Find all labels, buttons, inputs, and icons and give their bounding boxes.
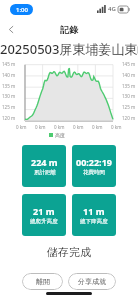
staticText: 125 m — [122, 104, 136, 110]
staticText: 11 m — [83, 205, 105, 217]
staticText: 00:22:19 — [76, 156, 112, 168]
staticText: 120 m — [122, 115, 136, 121]
button[interactable]: Back — [0, 18, 22, 40]
button[interactable]: 11 m — [72, 194, 116, 236]
staticText: 120 m — [2, 115, 16, 121]
staticText: 4G — [108, 5, 116, 13]
staticText: 累計距離 — [34, 169, 56, 176]
staticText: 花費時間 — [83, 169, 105, 176]
staticText: 0 km — [35, 124, 46, 130]
staticText: 離開 — [36, 277, 50, 286]
staticText: 20250503屏東埔姜山東峰 — [0, 40, 138, 58]
staticText: 高度 — [55, 132, 65, 138]
staticText: 140 m — [2, 72, 16, 78]
staticText: 130 m — [2, 93, 16, 99]
button[interactable]: 00:22:19 — [72, 145, 116, 187]
staticText: 記錄 — [60, 24, 78, 35]
staticText: 0 km — [111, 124, 122, 130]
staticText: 21 m — [33, 205, 55, 217]
button[interactable]: 離開 — [22, 273, 63, 290]
staticText: 儲存完成 — [0, 245, 138, 259]
staticText: 0 km — [54, 124, 65, 130]
staticText: 分享成就 — [78, 277, 106, 286]
staticText: 總下降高度 — [80, 218, 108, 225]
staticText: 140 m — [122, 72, 136, 78]
button[interactable]: 分享成就 — [68, 273, 116, 290]
staticText: 1:00 — [16, 6, 28, 14]
staticText: 125 m — [2, 104, 16, 110]
staticText: 135 m — [2, 83, 16, 89]
staticText: 總爬升高度 — [30, 218, 58, 225]
staticText: 0 km — [92, 124, 103, 130]
staticText: 0 km — [73, 124, 84, 130]
staticText: 0 km — [16, 124, 27, 130]
staticText: 224 m — [31, 156, 58, 168]
staticText: 145 m — [122, 61, 136, 67]
staticText: 145 m — [2, 61, 16, 67]
button[interactable]: 224 m — [22, 145, 66, 187]
staticText: 130 m — [122, 93, 136, 99]
staticText: 135 m — [122, 83, 136, 89]
button[interactable]: 21 m — [22, 194, 66, 236]
